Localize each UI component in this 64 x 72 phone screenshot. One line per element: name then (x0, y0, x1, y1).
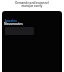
staticText: manque sorely (0, 4, 64, 8)
staticText: Nouveautes (4, 22, 23, 26)
staticText: Demande professionnel (0, 1, 64, 5)
staticText: Actualites (5, 19, 17, 22)
